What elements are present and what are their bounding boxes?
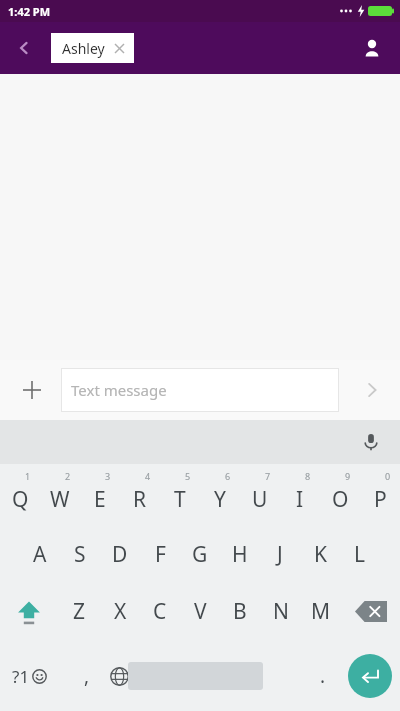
staticText: . bbox=[320, 663, 326, 689]
staticText: 9 bbox=[345, 470, 351, 482]
staticText: W bbox=[50, 485, 70, 514]
button[interactable]: Shift bbox=[0, 583, 58, 640]
staticText: Ashley bbox=[62, 39, 105, 58]
staticText: J bbox=[277, 540, 283, 569]
staticText: U bbox=[252, 485, 268, 514]
staticText: 2 bbox=[65, 470, 71, 482]
button[interactable]: C bbox=[141, 583, 179, 640]
staticText: I bbox=[296, 485, 304, 514]
button[interactable]: . bbox=[306, 659, 340, 693]
staticText: Text message bbox=[71, 380, 167, 400]
button[interactable]: 0 bbox=[360, 464, 400, 526]
staticText: L bbox=[354, 540, 366, 569]
button[interactable]: L bbox=[340, 526, 380, 583]
staticText: 4 bbox=[145, 470, 151, 482]
button[interactable]: G bbox=[180, 526, 220, 583]
button[interactable]: Backspace bbox=[342, 583, 400, 640]
button[interactable]: F bbox=[140, 526, 180, 583]
staticText: M bbox=[311, 597, 331, 626]
button[interactable]: S bbox=[60, 526, 100, 583]
staticText: 8 bbox=[305, 470, 311, 482]
button[interactable]: 9 bbox=[320, 464, 360, 526]
button[interactable]: J bbox=[260, 526, 300, 583]
button[interactable]: Enter bbox=[348, 654, 392, 698]
staticText: A bbox=[33, 540, 47, 569]
button[interactable]: Z bbox=[60, 583, 98, 640]
button[interactable]: 1 bbox=[0, 464, 40, 526]
staticText: T bbox=[174, 485, 186, 514]
button[interactable]: A bbox=[20, 526, 60, 583]
staticText: B bbox=[233, 597, 247, 626]
button[interactable]: K bbox=[300, 526, 340, 583]
staticText: C bbox=[153, 597, 167, 626]
staticText: 1 bbox=[25, 470, 31, 482]
button[interactable]: Back bbox=[6, 30, 42, 66]
button[interactable]: Change language bbox=[102, 659, 136, 693]
button[interactable]: Text message bbox=[61, 368, 339, 412]
button[interactable]: 3 bbox=[80, 464, 120, 526]
staticText: N bbox=[273, 597, 289, 626]
staticText: Q bbox=[12, 485, 29, 514]
button[interactable]: 4 bbox=[120, 464, 160, 526]
button[interactable]: 2 bbox=[40, 464, 80, 526]
button[interactable]: Voice input bbox=[354, 425, 388, 459]
staticText: 3 bbox=[105, 470, 111, 482]
button[interactable]: Ashley bbox=[51, 33, 134, 63]
button[interactable]: D bbox=[100, 526, 140, 583]
staticText: Z bbox=[73, 597, 86, 626]
staticText: 0 bbox=[385, 470, 391, 482]
staticText: X bbox=[114, 597, 127, 626]
button[interactable]: V bbox=[181, 583, 219, 640]
button[interactable]: 8 bbox=[280, 464, 320, 526]
staticText: H bbox=[232, 540, 248, 569]
staticText: 7 bbox=[265, 470, 271, 482]
button[interactable]: M bbox=[302, 583, 340, 640]
staticText: S bbox=[74, 540, 86, 569]
button[interactable]: H bbox=[220, 526, 260, 583]
staticText: 5 bbox=[185, 470, 191, 482]
button[interactable]: 7 bbox=[240, 464, 280, 526]
button[interactable]: Send bbox=[352, 370, 392, 410]
staticText: 1:42 PM bbox=[8, 4, 51, 19]
staticText: E bbox=[94, 485, 106, 514]
button[interactable]: , bbox=[70, 659, 104, 693]
staticText: O bbox=[332, 485, 349, 514]
staticText: D bbox=[112, 540, 128, 569]
button[interactable]: ?1 bbox=[12, 648, 47, 704]
button[interactable]: 5 bbox=[160, 464, 200, 526]
button[interactable]: N bbox=[262, 583, 300, 640]
staticText: , bbox=[84, 663, 90, 689]
button[interactable]: 6 bbox=[200, 464, 240, 526]
staticText: G bbox=[192, 540, 208, 569]
staticText: R bbox=[133, 485, 147, 514]
staticText: K bbox=[314, 540, 327, 569]
button[interactable]: B bbox=[221, 583, 259, 640]
button[interactable]: Contacts bbox=[352, 28, 392, 68]
button[interactable]: X bbox=[101, 583, 139, 640]
staticText: F bbox=[155, 540, 166, 569]
staticText: Y bbox=[214, 485, 226, 514]
button[interactable]: Add attachment bbox=[14, 372, 50, 408]
staticText: V bbox=[194, 597, 207, 626]
staticText: P bbox=[374, 485, 387, 514]
staticText: 6 bbox=[225, 470, 231, 482]
staticText: ?1 bbox=[12, 665, 30, 688]
